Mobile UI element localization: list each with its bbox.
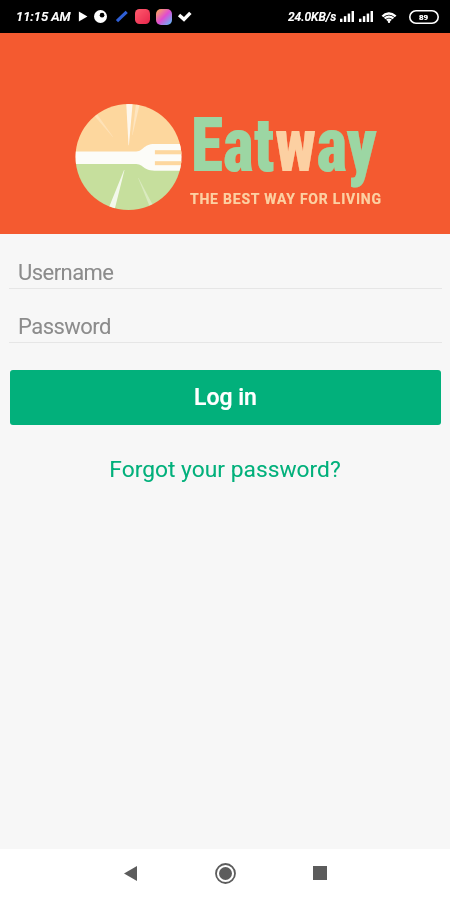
staticText: THE BEST WAY FOR LIVING [190,191,382,207]
staticText: w [275,100,316,189]
staticText: Log in [194,384,257,411]
staticText: Eat [191,100,275,189]
staticText: 11:15 AM [16,9,71,24]
staticText: Password [18,314,111,340]
button[interactable]: Recent apps [296,849,344,897]
button[interactable]: Password [0,314,450,340]
button[interactable]: Back [106,849,154,897]
button[interactable]: Username [0,260,450,286]
button[interactable]: Log in [10,370,441,425]
staticText: Forgot your password? [109,456,341,483]
staticText: ay [316,100,377,189]
staticText: Username [18,260,114,286]
button[interactable]: Home [201,849,249,897]
button[interactable]: Forgot your password? [0,456,450,483]
staticText: 89 [419,13,429,22]
staticText: 24.0KB/s [288,10,337,24]
